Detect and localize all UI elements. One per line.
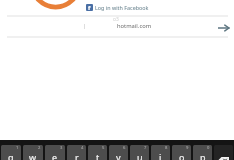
staticText: w — [29, 151, 37, 160]
staticText: 1 — [16, 145, 19, 151]
staticText: 4 — [81, 145, 84, 151]
staticText: y — [116, 151, 121, 160]
button[interactable]: 8 — [151, 145, 170, 160]
staticText: p — [200, 151, 206, 160]
button[interactable]: Next — [214, 21, 233, 35]
staticText: 0 — [207, 145, 210, 151]
staticText: 9 — [186, 145, 189, 151]
staticText: e — [52, 151, 58, 160]
staticText: 7 — [144, 145, 147, 151]
staticText: o3 — [113, 16, 119, 23]
staticText: hotmail.com — [117, 22, 152, 30]
button[interactable]: 9 — [172, 145, 191, 160]
staticText: r — [75, 151, 79, 160]
staticText: 3 — [60, 145, 63, 151]
button[interactable]: 7 — [130, 145, 149, 160]
staticText: o — [179, 151, 185, 160]
button[interactable]: 6 — [109, 145, 128, 160]
staticText: 6 — [123, 145, 126, 151]
staticText: f — [88, 4, 91, 11]
button[interactable]: 4 — [67, 145, 86, 160]
staticText: 2 — [38, 145, 41, 151]
button[interactable]: Backspace — [214, 145, 233, 160]
staticText: t — [96, 151, 100, 160]
staticText: i — [159, 151, 162, 160]
staticText: q — [8, 151, 14, 160]
staticText: u — [137, 151, 143, 160]
staticText: 5 — [102, 145, 105, 151]
button[interactable]: 2 — [23, 145, 43, 160]
staticText: 8 — [165, 145, 168, 151]
button[interactable]: f — [86, 2, 149, 12]
button[interactable]: 0 — [193, 145, 212, 160]
button[interactable]: 5 — [88, 145, 107, 160]
button[interactable]: 1 — [1, 145, 21, 160]
button[interactable]: 3 — [45, 145, 65, 160]
staticText: Log in with Facebook — [95, 4, 149, 11]
